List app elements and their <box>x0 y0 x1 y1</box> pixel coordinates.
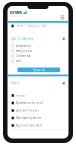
staticText: New developments <box>16 116 41 120</box>
staticText: Land and houses <box>16 109 39 112</box>
button[interactable]: Commercial <box>11 54 61 58</box>
staticText: Family house <box>15 49 32 53</box>
staticText: Land <box>15 59 21 63</box>
staticText: Houses <box>16 94 26 97</box>
staticText: Search <box>33 67 45 72</box>
staticText: Apartments <box>15 44 30 48</box>
button[interactable]: Land <box>11 59 61 63</box>
staticText: Commercial <box>15 54 30 58</box>
button[interactable]: Apartments <box>11 44 61 48</box>
button[interactable]: Family house <box>11 49 61 53</box>
staticText: Home / Category / Flats <box>16 24 47 27</box>
staticText: Filters <box>11 81 19 85</box>
staticText: Agencies and more <box>16 124 43 127</box>
button[interactable]: New developments <box>11 115 63 120</box>
button[interactable]: Houses <box>11 93 63 98</box>
staticText: Apartments for rent <box>16 101 43 105</box>
staticText: ESTATE <box>10 9 22 15</box>
button[interactable]: Land and houses <box>11 108 63 113</box>
staticText: Type of category <box>11 37 33 40</box>
button[interactable]: Agencies and more <box>11 123 63 128</box>
button[interactable]: Apartments for rent <box>11 100 63 105</box>
button[interactable]: Menu <box>58 14 66 21</box>
button[interactable]: Search <box>17 67 60 72</box>
